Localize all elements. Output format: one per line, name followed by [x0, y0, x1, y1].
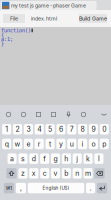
- staticText: 7: [70, 125, 74, 133]
- staticText: index.html: [31, 15, 57, 22]
- staticText: s: [21, 154, 25, 163]
- button[interactable]: File: [3, 14, 25, 23]
- staticText: 2: [15, 125, 19, 133]
- button[interactable]: f: [40, 153, 49, 164]
- button[interactable]: Clipboard: [1, 105, 16, 124]
- button[interactable]: Voice input: [61, 105, 76, 124]
- staticText: w: [14, 140, 20, 148]
- staticText: !#1: [6, 185, 12, 191]
- staticText: English (US): [42, 185, 69, 191]
- button[interactable]: 2: [13, 124, 22, 134]
- button[interactable]: h: [62, 153, 71, 164]
- staticText: 5: [48, 125, 52, 133]
- button[interactable]: l: [94, 153, 103, 164]
- button[interactable]: .: [86, 183, 95, 193]
- staticText: ,: [20, 184, 22, 192]
- staticText: k: [86, 154, 90, 163]
- staticText: x: [32, 169, 36, 178]
- button[interactable]: q: [2, 139, 11, 149]
- staticText: t: [49, 140, 51, 148]
- staticText: Build Game: [79, 15, 107, 22]
- staticText: z: [21, 169, 25, 178]
- button[interactable]: t: [45, 139, 55, 149]
- button[interactable]: d: [29, 153, 38, 164]
- staticText: {: [1, 32, 4, 38]
- button[interactable]: Shift: [6, 168, 17, 179]
- staticText: 0: [102, 125, 106, 133]
- staticText: 9: [91, 125, 95, 133]
- button[interactable]: 8: [78, 124, 87, 134]
- button[interactable]: 3: [24, 124, 33, 134]
- staticText: v: [53, 169, 57, 178]
- button[interactable]: GIF: [46, 105, 61, 124]
- staticText: d: [32, 154, 36, 163]
- button[interactable]: 9: [89, 124, 98, 134]
- button[interactable]: !#1: [4, 183, 14, 193]
- button[interactable]: Backspace: [94, 168, 105, 179]
- button[interactable]: e: [24, 139, 33, 149]
- button[interactable]: p: [100, 139, 109, 149]
- button[interactable]: g: [51, 153, 60, 164]
- button[interactable]: b: [62, 168, 71, 179]
- button[interactable]: y: [56, 139, 65, 149]
- button[interactable]: Enter: [97, 183, 107, 193]
- staticText: p: [102, 140, 106, 148]
- button[interactable]: o: [89, 139, 98, 149]
- button[interactable]: Hide keyboard: [98, 105, 110, 124]
- staticText: }: [1, 40, 4, 47]
- button[interactable]: Settings: [76, 105, 91, 124]
- staticText: h: [64, 154, 68, 163]
- button[interactable]: r: [35, 139, 44, 149]
- staticText: m: [85, 169, 91, 178]
- button[interactable]: 0: [100, 124, 109, 134]
- staticText: n: [75, 169, 79, 178]
- staticText: my test js game - phaser Game: [11, 2, 86, 9]
- button[interactable]: v: [51, 168, 60, 179]
- button[interactable]: 7: [67, 124, 76, 134]
- staticText: 3: [26, 125, 30, 133]
- staticText: b: [64, 169, 68, 178]
- button[interactable]: 4: [35, 124, 44, 134]
- button[interactable]: j: [73, 153, 82, 164]
- button[interactable]: k: [83, 153, 93, 164]
- button[interactable]: s: [18, 153, 27, 164]
- button[interactable]: m: [83, 168, 93, 179]
- button[interactable]: Emoji: [16, 105, 31, 124]
- button[interactable]: Build Game: [79, 14, 107, 23]
- button[interactable]: z: [18, 168, 27, 179]
- staticText: a: [10, 154, 14, 163]
- button[interactable]: a: [8, 153, 17, 164]
- staticText: q: [5, 140, 9, 148]
- staticText: c: [43, 169, 47, 178]
- staticText: e: [26, 140, 30, 148]
- button[interactable]: 6: [56, 124, 65, 134]
- button[interactable]: w: [13, 139, 22, 149]
- button[interactable]: 1: [2, 124, 11, 134]
- button[interactable]: c: [40, 168, 49, 179]
- staticText: 6: [59, 125, 63, 133]
- staticText: o: [91, 140, 95, 148]
- button[interactable]: Sticker: [31, 105, 46, 124]
- button[interactable]: 5: [45, 124, 55, 134]
- button[interactable]: n: [73, 168, 82, 179]
- staticText: g: [53, 154, 57, 163]
- staticText: r: [38, 140, 41, 148]
- button[interactable]: English (US): [28, 183, 84, 193]
- button[interactable]: x: [29, 168, 38, 179]
- staticText: a:1;: [1, 36, 13, 42]
- staticText: y: [59, 140, 63, 148]
- staticText: j: [76, 154, 78, 163]
- staticText: u: [70, 140, 74, 148]
- button[interactable]: ,: [16, 183, 26, 193]
- staticText: File: [10, 15, 18, 22]
- button[interactable]: u: [67, 139, 76, 149]
- staticText: l: [98, 154, 100, 163]
- button[interactable]: i: [78, 139, 87, 149]
- staticText: 4: [37, 125, 41, 133]
- button[interactable]: my test js game - phaser Game: [1, 1, 97, 10]
- staticText: function(): [1, 27, 31, 33]
- staticText: .: [89, 184, 91, 192]
- staticText: 8: [81, 125, 85, 133]
- staticText: i: [82, 140, 84, 148]
- staticText: 1: [5, 125, 8, 133]
